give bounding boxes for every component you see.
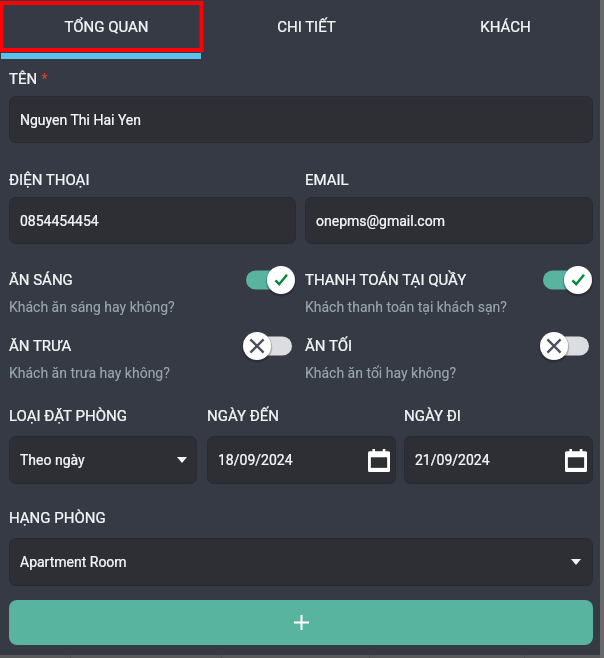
staticText: EMAIL xyxy=(305,171,349,189)
staticText: ĂN TRƯA xyxy=(9,337,72,355)
staticText: ĂN SÁNG xyxy=(9,271,73,289)
button[interactable]: 21/09/2024 xyxy=(404,436,593,484)
staticText: LOẠI ĐẶT PHÒNG xyxy=(9,407,127,425)
staticText: ĐIỆN THOẠI xyxy=(9,171,90,189)
button[interactable]: Thêm xyxy=(9,600,593,645)
button[interactable]: 0854454454 xyxy=(9,197,296,244)
staticText: ĂN TỐI xyxy=(305,337,353,355)
button[interactable]: CHI TIẾT xyxy=(206,0,406,53)
button[interactable]: KHÁCH xyxy=(406,0,604,53)
button[interactable]: 18/09/2024 xyxy=(207,436,396,484)
button[interactable]: ĂN TRƯA xyxy=(245,331,296,361)
staticText: NGÀY ĐẾN xyxy=(207,407,280,425)
button[interactable]: onepms@gmail.com xyxy=(305,197,593,244)
staticText: HẠNG PHÒNG xyxy=(9,509,106,527)
staticText: Khách ăn tối hay không? xyxy=(305,365,457,381)
staticText: Apartment Room xyxy=(20,554,127,570)
staticText: THANH TOÁN TẠI QUẦY xyxy=(305,271,467,289)
staticText: * xyxy=(38,71,48,87)
staticText: Nguyen Thi Hai Yen xyxy=(20,112,141,128)
button[interactable]: ĂN SÁNG xyxy=(9,265,296,323)
staticText: 0854454454 xyxy=(20,213,99,229)
button[interactable]: ĂN TỐI xyxy=(542,331,593,361)
button[interactable]: ĂN SÁNG xyxy=(245,265,296,295)
button[interactable]: Nguyen Thi Hai Yen xyxy=(9,96,593,143)
staticText: Khách thanh toán tại khách sạn? xyxy=(305,299,507,315)
button[interactable]: ĂN TỐI xyxy=(305,331,593,389)
button[interactable]: ĂN TRƯA xyxy=(9,331,296,389)
button[interactable]: TỔNG QUAN xyxy=(6,0,206,53)
staticText: TÊN xyxy=(9,70,38,88)
button[interactable]: Theo ngày xyxy=(9,436,197,484)
staticText: 21/09/2024 xyxy=(415,452,490,468)
staticText: KHÁCH xyxy=(480,18,531,36)
staticText: onepms@gmail.com xyxy=(316,213,445,229)
button[interactable]: THANH TOÁN TẠI QUẦY xyxy=(305,265,593,323)
button[interactable]: Apartment Room xyxy=(9,538,593,586)
staticText: 18/09/2024 xyxy=(218,452,293,468)
staticText: Theo ngày xyxy=(20,452,85,468)
button[interactable]: THANH TOÁN TẠI QUẦY xyxy=(542,265,593,295)
staticText: Khách ăn trưa hay không? xyxy=(9,365,170,381)
staticText: CHI TIẾT xyxy=(277,18,336,36)
staticText: Khách ăn sáng hay không? xyxy=(9,299,175,315)
staticText: NGÀY ĐI xyxy=(404,407,461,425)
staticText: TỔNG QUAN xyxy=(64,18,149,36)
